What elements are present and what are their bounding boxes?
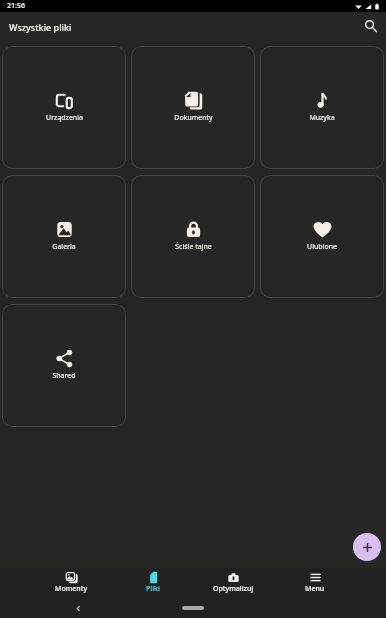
button[interactable]: Momenty — [31, 568, 112, 598]
staticText: Galeria — [52, 242, 76, 252]
staticText: Ulubione — [307, 242, 337, 252]
staticText: 21:56 — [7, 1, 25, 11]
button[interactable]: Search — [360, 15, 382, 37]
button[interactable]: Dokumenty — [131, 46, 255, 169]
staticText: Menu — [305, 584, 325, 594]
button[interactable]: Add — [353, 533, 381, 561]
staticText: Pliki — [146, 584, 160, 594]
staticText: Momenty — [55, 584, 88, 594]
button[interactable]: Optymalizuj — [193, 568, 274, 598]
staticText: Optymalizuj — [213, 584, 254, 594]
button[interactable]: Ulubione — [260, 175, 384, 298]
staticText: Shared — [52, 371, 76, 381]
button[interactable]: Menu — [274, 568, 355, 598]
button[interactable]: Ściśle tajne — [131, 175, 255, 298]
button[interactable]: Pliki — [112, 568, 193, 598]
staticText: Ściśle tajne — [175, 242, 212, 252]
staticText: Urządzenia — [46, 113, 83, 123]
staticText: Wszystkie pliki — [9, 21, 72, 33]
staticText: Muzyka — [309, 113, 335, 123]
staticText: Dokumenty — [174, 113, 213, 123]
button[interactable]: Shared — [2, 304, 126, 427]
button[interactable]: Galeria — [2, 175, 126, 298]
button[interactable]: Muzyka — [260, 46, 384, 169]
button[interactable]: Urządzenia — [2, 46, 126, 169]
